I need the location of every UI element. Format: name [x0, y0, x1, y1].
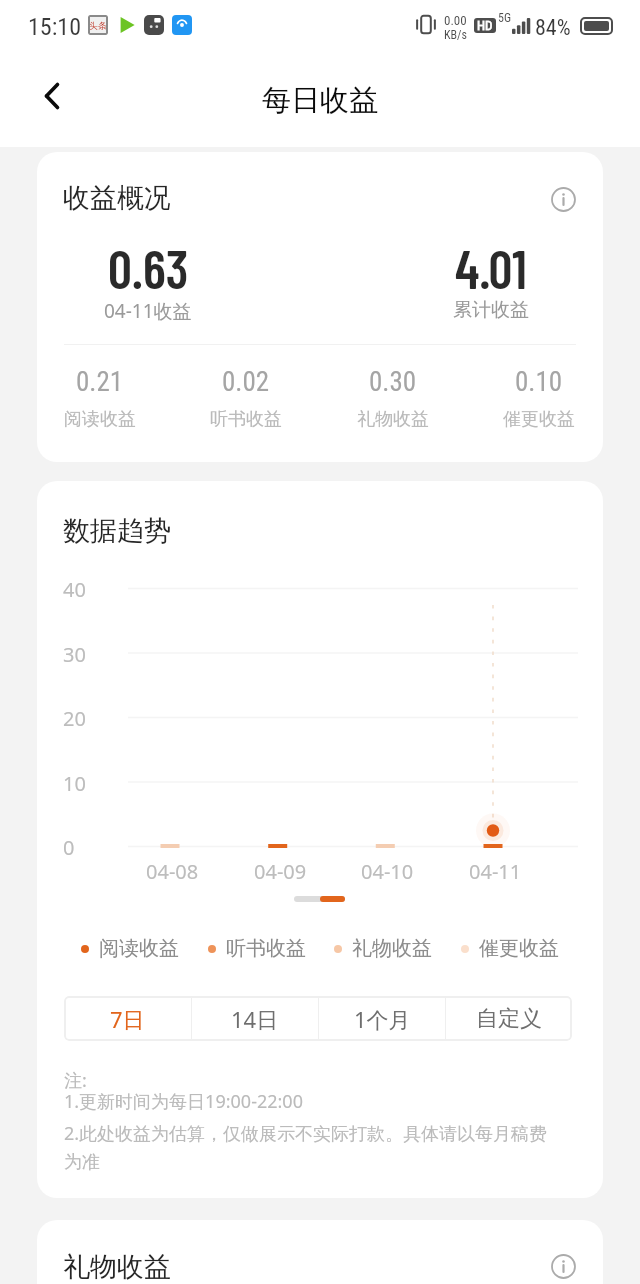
staticText: 0.21	[76, 366, 124, 398]
staticText: 数据趋势	[63, 514, 171, 548]
staticText: 20	[63, 705, 86, 732]
staticText: 0	[63, 834, 75, 861]
staticText: 注:	[64, 1068, 87, 1093]
staticText: 04-11收益	[104, 298, 192, 324]
staticText: 每日收益	[262, 82, 378, 119]
staticText: 2.此处收益为估算，仅做展示不实际打款。具体请以每月稿费为准	[64, 1121, 556, 1173]
staticText: 自定义	[476, 1005, 542, 1033]
staticText: 催更收益	[479, 936, 559, 961]
staticText: 0.63	[108, 236, 189, 300]
staticText: 催更收益	[503, 408, 575, 431]
button[interactable]: 7日	[64, 996, 191, 1041]
staticText: 10	[63, 770, 86, 797]
staticText: 04-08	[146, 858, 199, 885]
staticText: 阅读收益	[64, 408, 136, 431]
staticText: 14日	[231, 1004, 279, 1034]
staticText: 阅读收益	[99, 936, 179, 961]
staticText: 0.30	[369, 366, 417, 398]
staticText: 0.02	[222, 366, 270, 398]
staticText: 84%	[535, 15, 571, 41]
staticText: 听书收益	[210, 408, 282, 431]
staticText: 礼物收益	[63, 1250, 171, 1284]
staticText: 30	[63, 641, 86, 668]
staticText: 累计收益	[453, 298, 529, 322]
button[interactable]: 1个月	[319, 996, 445, 1041]
staticText: KB/s	[444, 28, 468, 42]
staticText: 15:10	[28, 13, 81, 41]
staticText: 0.10	[515, 366, 563, 398]
staticText: 头条	[89, 20, 107, 31]
staticText: HD	[477, 18, 493, 33]
staticText: 04-10	[361, 858, 414, 885]
staticText: 礼物收益	[357, 408, 429, 431]
button[interactable]: 自定义	[446, 996, 572, 1041]
staticText: 7日	[110, 1004, 145, 1034]
button[interactable]: Back	[29, 73, 75, 119]
staticText: 04-11	[469, 858, 522, 885]
staticText: 礼物收益	[352, 936, 432, 961]
staticText: 1个月	[354, 1004, 411, 1034]
staticText: 0.00	[444, 13, 467, 28]
staticText: 04-09	[254, 858, 307, 885]
button[interactable]: Info	[541, 1244, 585, 1284]
button[interactable]: 14日	[192, 996, 318, 1041]
staticText: 4.01	[455, 236, 527, 300]
staticText: 1.更新时间为每日19:00-22:00	[64, 1089, 303, 1114]
staticText: 听书收益	[226, 936, 306, 961]
staticText: 收益概况	[63, 181, 171, 215]
staticText: 40	[63, 576, 86, 603]
staticText: 5G	[498, 11, 512, 25]
button[interactable]: Info	[541, 177, 585, 221]
